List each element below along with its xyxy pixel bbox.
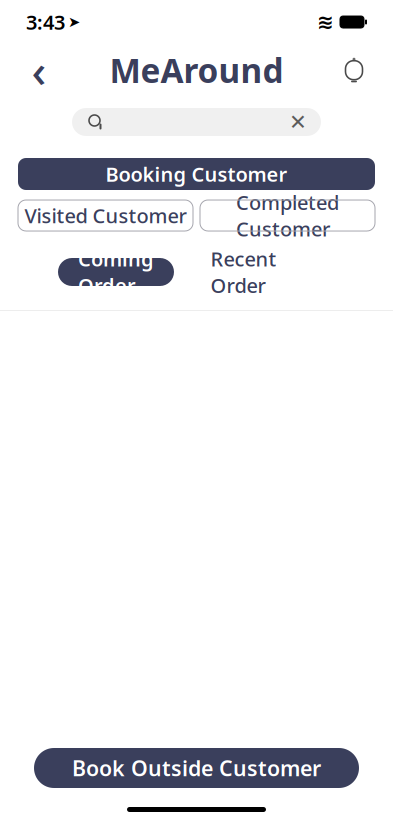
button[interactable]: Book Outside Customer bbox=[34, 748, 359, 788]
staticText: Booking Customer bbox=[105, 161, 287, 187]
staticText: Completed Customer bbox=[236, 189, 339, 242]
staticText: ➤ bbox=[68, 14, 80, 30]
button[interactable]: ✕ bbox=[72, 108, 321, 136]
button[interactable]: Visited Customer bbox=[18, 200, 193, 231]
staticText: Visited Customer bbox=[24, 202, 186, 229]
staticText: Book Outside Customer bbox=[72, 754, 321, 782]
button[interactable]: Completed Customer bbox=[200, 200, 375, 231]
staticText: ✕ bbox=[289, 110, 307, 134]
button[interactable]: Coming Order bbox=[58, 258, 174, 286]
button[interactable]: Recent Order bbox=[190, 258, 296, 286]
staticText: Coming Order bbox=[78, 245, 154, 298]
staticText: ≋ bbox=[317, 11, 334, 33]
button[interactable]: Back bbox=[16, 48, 62, 92]
staticText: 3:43 bbox=[26, 9, 65, 35]
staticText: ‹ bbox=[31, 40, 46, 100]
button[interactable]: Notifications bbox=[331, 48, 377, 92]
button[interactable]: Booking Customer bbox=[18, 158, 375, 190]
staticText: Recent Order bbox=[210, 245, 276, 298]
staticText: MeAround bbox=[109, 48, 283, 92]
